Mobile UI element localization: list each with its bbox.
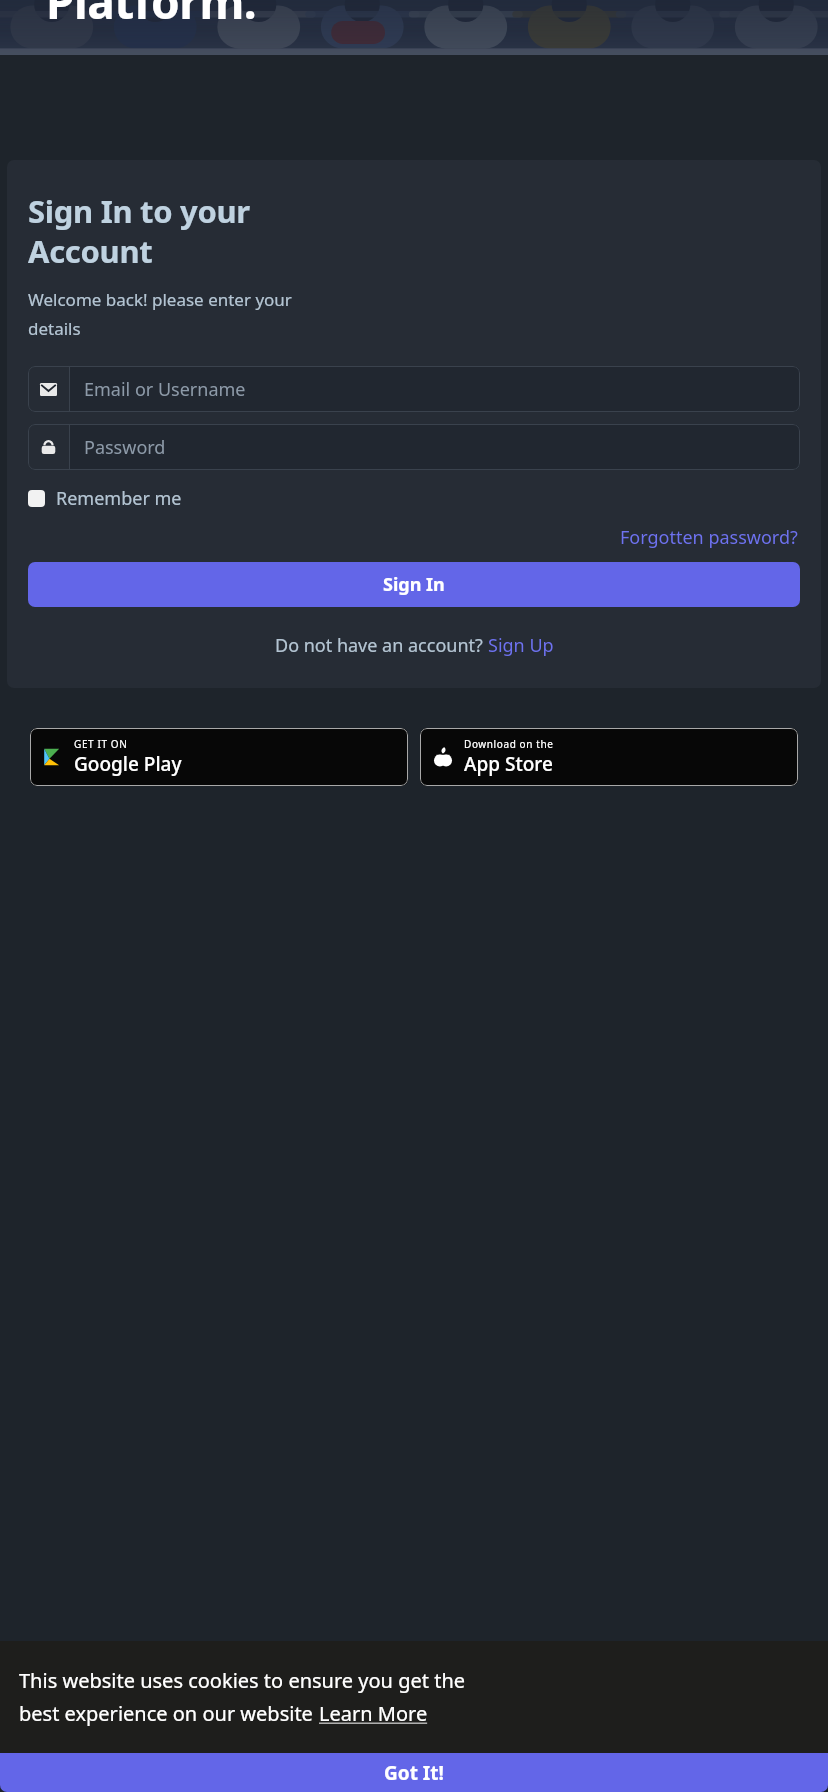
button[interactable]: Sign Up — [488, 633, 554, 658]
staticText: Password — [84, 435, 166, 460]
staticText: Sign In — [383, 572, 445, 597]
button[interactable]: Forgotten password? — [618, 523, 800, 552]
staticText: Do not have an account? — [275, 633, 488, 658]
other: Password — [40, 439, 57, 456]
other: Email — [40, 381, 57, 398]
staticText: App Store — [464, 751, 553, 777]
staticText: Google Play — [74, 751, 182, 777]
staticText: Platform. — [46, 0, 257, 25]
button[interactable]: Download on the — [420, 728, 798, 786]
staticText: GET IT ON — [74, 737, 128, 751]
button[interactable]: Learn More — [319, 1700, 428, 1727]
staticText: Got It! — [384, 1760, 444, 1786]
staticText: Download on the — [464, 737, 554, 751]
button[interactable]: Password — [28, 424, 800, 470]
button[interactable]: Email — [28, 366, 800, 412]
button[interactable]: Remember me — [28, 484, 182, 513]
staticText: This website uses cookies to ensure you … — [19, 1667, 466, 1694]
staticText: Remember me — [56, 486, 182, 511]
button[interactable]: GET IT ON — [30, 728, 408, 786]
button[interactable]: Sign In — [28, 562, 800, 607]
staticText: Sign In to your Account — [28, 190, 250, 272]
staticText: best experience on our website — [19, 1700, 319, 1727]
button[interactable]: Got It! — [0, 1753, 828, 1792]
staticText: Email or Username — [84, 377, 246, 402]
staticText: Welcome back! please enter your details — [28, 288, 292, 340]
